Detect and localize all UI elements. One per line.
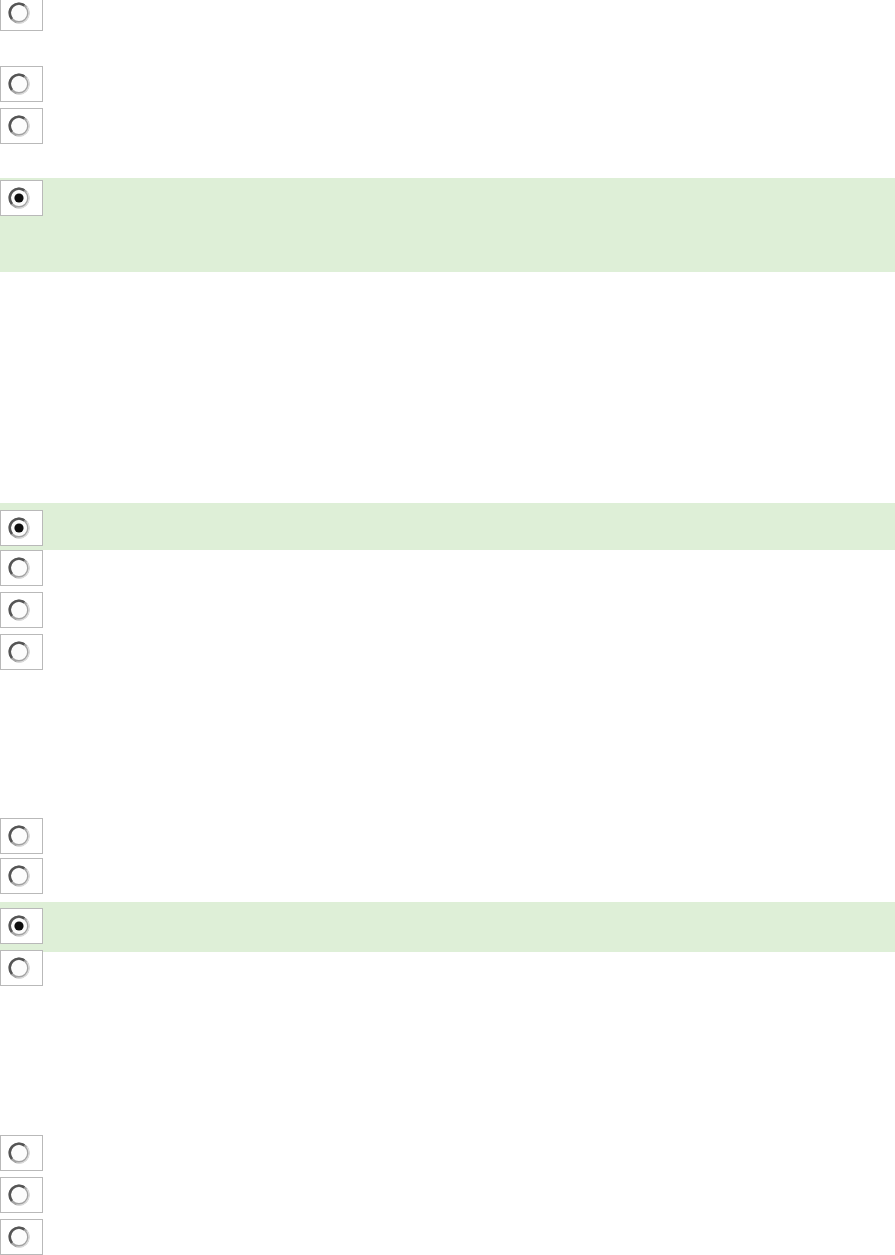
button[interactable]: Answer option 2 (0, 66, 43, 102)
button[interactable]: Answer option 4, selected (0, 180, 43, 216)
button[interactable]: Answer option 10 (0, 858, 43, 894)
button[interactable]: Answer option 11, selected (0, 908, 43, 944)
button[interactable]: Answer option 8 (0, 634, 43, 670)
button[interactable]: Answer option 13 (0, 1135, 43, 1171)
button[interactable]: Answer option 14 (0, 1177, 43, 1213)
button[interactable]: Answer option 3 (0, 108, 43, 144)
button[interactable]: Answer option 6 (0, 550, 43, 586)
button[interactable]: Answer option 9 (0, 818, 43, 854)
button[interactable]: Answer option 7 (0, 592, 43, 628)
button[interactable]: Answer option 1 (0, 0, 43, 31)
button[interactable]: Answer option 15 (0, 1219, 43, 1255)
button[interactable]: Answer option 12 (0, 950, 43, 986)
button[interactable]: Answer option 5, selected (0, 510, 43, 546)
